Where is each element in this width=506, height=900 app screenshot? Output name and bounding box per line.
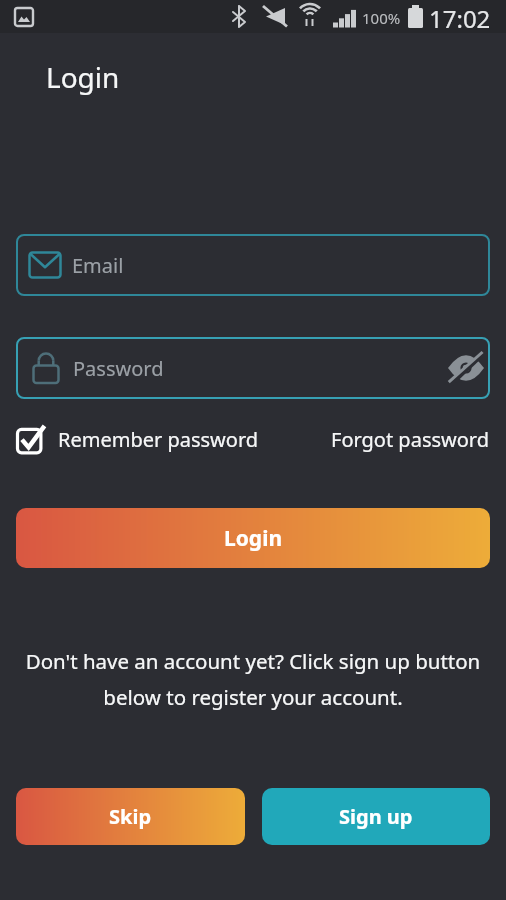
staticText: Login xyxy=(224,524,283,553)
staticText: 100% xyxy=(362,8,401,28)
staticText: Password xyxy=(73,355,164,382)
staticText: Don't have an account yet? Click sign up… xyxy=(0,647,506,711)
staticText: Skip xyxy=(109,803,152,830)
button[interactable]: Skip xyxy=(16,788,245,845)
staticText: 17:02 xyxy=(429,2,491,35)
button[interactable]: Login xyxy=(16,508,490,568)
button[interactable] xyxy=(448,353,484,383)
button[interactable]: Password xyxy=(16,337,490,399)
staticText: Login xyxy=(46,58,120,96)
staticText: Email xyxy=(72,252,124,279)
button[interactable]: Sign up xyxy=(262,788,490,845)
staticText: Sign up xyxy=(339,803,413,830)
button[interactable]: Email xyxy=(16,234,490,296)
button[interactable]: Remember password xyxy=(16,424,259,454)
staticText: Remember password xyxy=(58,426,259,453)
button[interactable]: Forgot password xyxy=(331,426,490,453)
